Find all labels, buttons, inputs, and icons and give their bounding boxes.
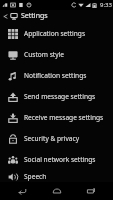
- staticText: 9:33: [100, 1, 112, 9]
- button[interactable]: Security & privacy: [0, 128, 113, 149]
- staticText: Notification settings: [24, 71, 87, 80]
- button[interactable]: Recent apps: [78, 182, 104, 200]
- other: Navigate up: [2, 13, 9, 20]
- staticText: Receive message settings: [24, 113, 104, 122]
- staticText: Application settings: [24, 29, 86, 38]
- button[interactable]: Social network settings: [0, 149, 113, 170]
- staticText: Custom style: [24, 50, 64, 59]
- button[interactable]: Custom style: [0, 44, 113, 65]
- staticText: Send message settings: [24, 92, 96, 101]
- button[interactable]: Home: [44, 182, 70, 200]
- button[interactable]: Navigate up: [0, 10, 113, 22]
- button[interactable]: Application settings: [0, 23, 113, 44]
- staticText: Social network settings: [24, 155, 96, 164]
- button[interactable]: Notification settings: [0, 65, 113, 86]
- staticText: Security & privacy: [24, 134, 80, 143]
- staticText: Settings: [21, 11, 48, 21]
- button[interactable]: Back: [9, 182, 35, 200]
- staticText: Speech: [24, 172, 47, 181]
- button[interactable]: Receive message settings: [0, 107, 113, 128]
- button[interactable]: Speech: [0, 170, 113, 182]
- button[interactable]: Send message settings: [0, 86, 113, 107]
